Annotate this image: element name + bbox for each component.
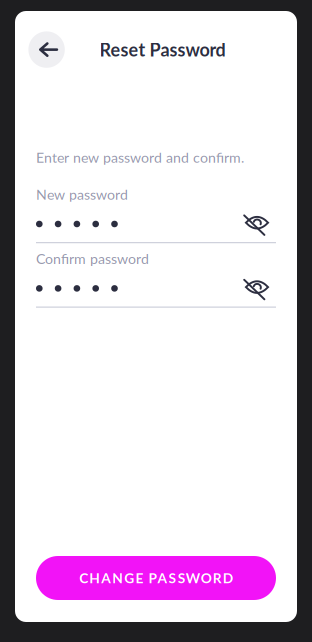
- button[interactable]: CHANGE PASSWORD: [36, 556, 276, 600]
- button[interactable]: Show password: [245, 278, 276, 298]
- staticText: New password: [36, 186, 128, 203]
- staticText: Enter new password and confirm.: [36, 149, 244, 166]
- staticText: Reset Password: [99, 39, 225, 60]
- button[interactable]: Show password: [245, 214, 276, 234]
- staticText: Confirm password: [36, 250, 149, 267]
- button[interactable]: Back: [28, 31, 65, 68]
- staticText: CHANGE PASSWORD: [79, 570, 233, 586]
